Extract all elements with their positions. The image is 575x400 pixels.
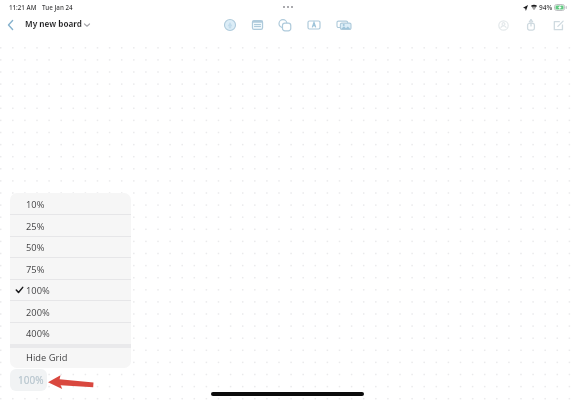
button[interactable]: Shapes bbox=[274, 14, 296, 36]
staticText: 94% bbox=[539, 3, 553, 12]
button[interactable]: Collaborate bbox=[492, 14, 514, 36]
staticText: 100% bbox=[26, 284, 50, 297]
staticText: My new board bbox=[25, 18, 82, 29]
button[interactable]: Back bbox=[2, 15, 18, 31]
staticText: 75% bbox=[26, 263, 45, 276]
button[interactable]: 100% bbox=[10, 279, 131, 301]
button[interactable]: Text box bbox=[303, 14, 325, 36]
button[interactable]: Sticky note bbox=[246, 14, 268, 36]
button[interactable]: Share bbox=[520, 14, 542, 36]
staticText: 50% bbox=[26, 241, 45, 254]
button[interactable]: 100% bbox=[10, 369, 47, 391]
staticText: 10% bbox=[26, 198, 45, 211]
staticText: 11:21 AM bbox=[9, 3, 37, 11]
button[interactable]: 75% bbox=[10, 258, 131, 280]
button[interactable]: Pen bbox=[219, 14, 241, 36]
button[interactable]: 25% bbox=[10, 215, 131, 237]
staticText: 400% bbox=[26, 327, 50, 340]
button[interactable]: My new board bbox=[25, 18, 90, 29]
staticText: 25% bbox=[26, 220, 45, 233]
button[interactable]: 400% bbox=[10, 322, 131, 344]
button[interactable]: 50% bbox=[10, 236, 131, 258]
button[interactable]: Hide Grid bbox=[10, 346, 131, 368]
staticText: Tue Jan 24 bbox=[42, 3, 73, 11]
button[interactable]: Media bbox=[333, 14, 355, 36]
button[interactable]: New board bbox=[547, 14, 569, 36]
staticText: Hide Grid bbox=[26, 351, 68, 364]
staticText: 100% bbox=[18, 373, 44, 387]
button[interactable]: 10% bbox=[10, 193, 131, 215]
button[interactable]: 200% bbox=[10, 301, 131, 323]
staticText: 200% bbox=[26, 306, 50, 319]
